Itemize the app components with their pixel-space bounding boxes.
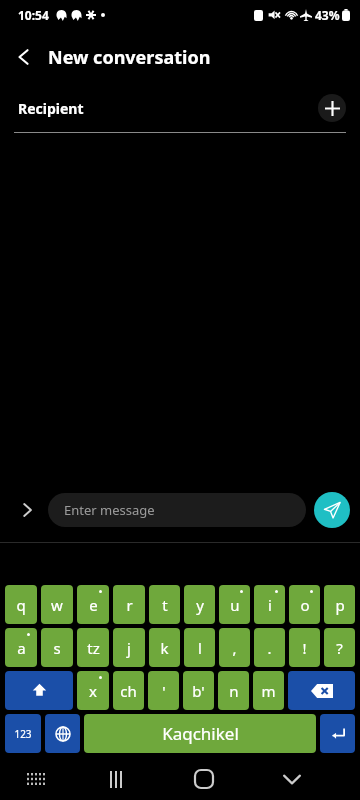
button[interactable]: n [218, 671, 249, 710]
button[interactable]: ! [289, 628, 320, 667]
button[interactable]: t [149, 585, 180, 624]
staticText: e [89, 595, 98, 615]
button[interactable]: k [149, 628, 180, 667]
staticText: 43% [315, 7, 340, 23]
staticText: s [53, 638, 61, 658]
staticText: . [267, 638, 272, 658]
staticText: 10:54 [18, 7, 49, 23]
button[interactable]: o [289, 585, 320, 624]
button[interactable]: r [113, 585, 145, 624]
staticText: a [17, 638, 26, 658]
button[interactable]: w [41, 585, 73, 624]
button[interactable]: e [77, 585, 109, 624]
staticText: y [196, 595, 204, 615]
button[interactable]: ch [113, 671, 144, 710]
staticText: t [162, 595, 168, 615]
staticText: r [126, 595, 133, 615]
staticText: b' [192, 681, 205, 701]
button[interactable]: i [254, 585, 285, 624]
staticText: ch [120, 681, 137, 701]
button[interactable]: b' [183, 671, 214, 710]
staticText: l [198, 638, 202, 658]
button[interactable]: tz [77, 628, 109, 667]
button[interactable]: . [254, 628, 285, 667]
button[interactable]: y [184, 585, 215, 624]
button[interactable]: x [77, 671, 109, 710]
staticText: New conversation [48, 45, 211, 70]
staticText: u [230, 595, 240, 615]
staticText: p [335, 595, 345, 615]
button[interactable]: Shift [5, 671, 73, 710]
staticText: o [300, 595, 310, 615]
button[interactable]: Hide keyboard [0, 758, 72, 800]
staticText: n [229, 681, 239, 701]
button[interactable]: u [219, 585, 250, 624]
button[interactable]: q [5, 585, 37, 624]
staticText: m [261, 681, 276, 701]
staticText: Recipient [18, 99, 84, 118]
staticText: i [268, 595, 272, 615]
button[interactable]: , [219, 628, 250, 667]
button[interactable]: a [5, 628, 37, 667]
button[interactable]: Expand [10, 493, 44, 527]
button[interactable]: Enter message [48, 493, 306, 527]
button[interactable]: ? [324, 628, 355, 667]
button[interactable]: j [113, 628, 145, 667]
button[interactable]: Kaqchikel [84, 714, 316, 753]
staticText: k [160, 638, 169, 658]
button[interactable]: Send [314, 492, 350, 528]
button[interactable]: ' [148, 671, 179, 710]
button[interactable]: Backspace [288, 671, 355, 710]
staticText: ' [162, 681, 166, 701]
button[interactable]: m [253, 671, 284, 710]
button[interactable]: Enter [320, 714, 355, 753]
staticText: x [89, 681, 97, 701]
staticText: q [16, 595, 26, 615]
button[interactable]: Home [160, 758, 248, 800]
staticText: , [232, 638, 237, 658]
staticText: w [51, 595, 63, 615]
button[interactable]: p [324, 585, 355, 624]
staticText: tz [87, 638, 100, 658]
button[interactable]: 123 [5, 714, 41, 753]
staticText: ? [336, 638, 343, 658]
button[interactable]: s [41, 628, 73, 667]
staticText: ! [302, 638, 307, 658]
button[interactable]: Recents [72, 758, 160, 800]
button[interactable]: Back [248, 758, 336, 800]
button[interactable]: Change language [45, 714, 80, 753]
staticText: Kaqchikel [162, 722, 239, 745]
staticText: Enter message [64, 501, 155, 519]
staticText: 123 [14, 727, 32, 741]
button[interactable]: Add recipient [318, 94, 346, 122]
staticText: j [127, 638, 131, 658]
button[interactable]: l [184, 628, 215, 667]
button[interactable]: Back [0, 33, 48, 81]
